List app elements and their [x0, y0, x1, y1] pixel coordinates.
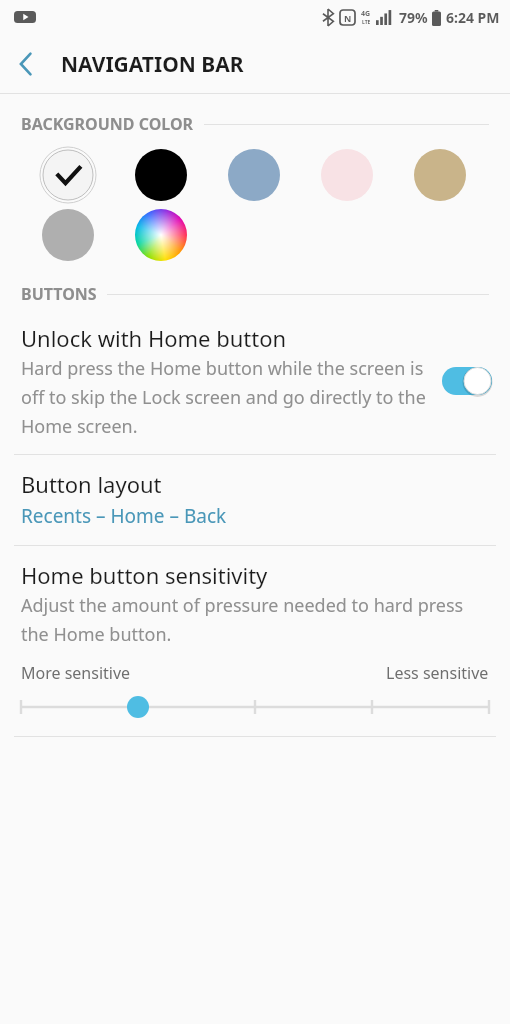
button[interactable]: Default background colour, selected	[40, 147, 96, 203]
staticText: 6:24 PM	[446, 8, 500, 27]
button[interactable]: Home button sensitivity slider	[0, 692, 510, 722]
button[interactable]: Background colour option	[226, 147, 282, 203]
staticText: Unlock with Home button	[21, 323, 287, 353]
staticText: NAVIGATION BAR	[61, 50, 244, 79]
button[interactable]: Background colour option	[319, 147, 375, 203]
staticText: BACKGROUND COLOR	[21, 113, 194, 135]
button[interactable]: Button layout	[0, 455, 510, 545]
staticText: Hard press the Home button while the scr…	[21, 356, 428, 438]
staticText: 4G	[361, 9, 371, 19]
staticText: BUTTONS	[21, 283, 97, 305]
button[interactable]: Background colour option	[412, 147, 468, 203]
staticText: N	[344, 12, 352, 24]
staticText: Adjust the amount of pressure needed to …	[21, 593, 489, 646]
staticText: More sensitive	[21, 662, 131, 684]
staticText: Less sensitive	[386, 662, 489, 684]
staticText: 79%	[399, 8, 428, 27]
button[interactable]: Unlock with Home button	[0, 309, 510, 454]
button[interactable]: Custom colour picker	[133, 207, 189, 263]
button[interactable]: Back	[0, 38, 52, 90]
button[interactable]: Background colour option	[133, 147, 189, 203]
button[interactable]: Background colour option	[40, 207, 96, 263]
staticText: Button layout	[21, 469, 162, 499]
staticText: LTE	[362, 19, 371, 26]
button[interactable]: Unlock with Home button toggle, on	[438, 359, 496, 403]
staticText: Recents – Home – Back	[21, 503, 227, 529]
staticText: Home button sensitivity	[21, 560, 268, 590]
